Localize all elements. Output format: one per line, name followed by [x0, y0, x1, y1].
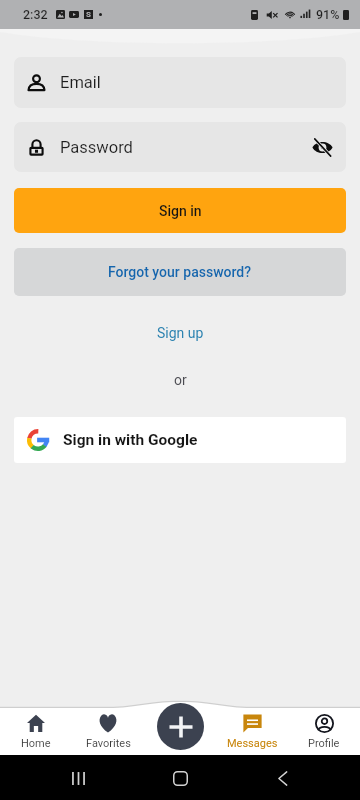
- staticText: or: [174, 372, 187, 388]
- staticText: Home: [21, 737, 51, 750]
- staticText: 91%: [316, 7, 340, 22]
- button[interactable]: Profile: [288, 702, 360, 755]
- button[interactable]: Email: [14, 57, 346, 108]
- button[interactable]: Sign in: [14, 188, 346, 233]
- button[interactable]: Messages: [216, 702, 288, 755]
- other: Show password: [312, 137, 333, 158]
- button[interactable]: Sign in with Google: [14, 417, 346, 463]
- staticText: Sign in: [159, 203, 202, 219]
- staticText: Favorites: [86, 737, 131, 750]
- button[interactable]: Add: [157, 703, 204, 750]
- staticText: 2:32: [23, 7, 48, 22]
- button[interactable]: Forgot your password?: [14, 248, 346, 296]
- button[interactable]: Back: [260, 756, 304, 800]
- button[interactable]: Password: [14, 122, 346, 172]
- button[interactable]: Sign up: [0, 320, 360, 346]
- staticText: Forgot your password?: [108, 264, 252, 280]
- button[interactable]: Home: [158, 756, 202, 800]
- button[interactable]: Home: [0, 702, 72, 755]
- staticText: Email: [60, 73, 101, 92]
- button[interactable]: Favorites: [72, 702, 144, 755]
- staticText: S: [86, 10, 91, 19]
- staticText: Sign in with Google: [63, 431, 198, 449]
- button[interactable]: Recent apps: [56, 756, 100, 800]
- staticText: Sign up: [157, 325, 204, 341]
- staticText: Password: [60, 138, 133, 157]
- staticText: Profile: [308, 737, 340, 750]
- staticText: Messages: [227, 737, 278, 750]
